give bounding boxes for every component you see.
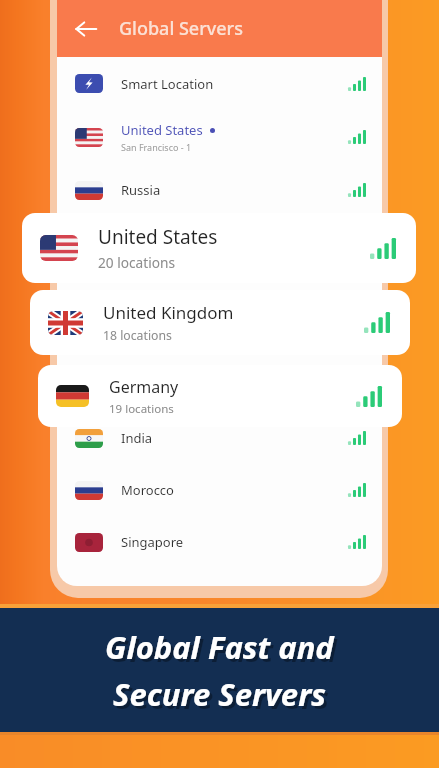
staticText: United States (121, 121, 203, 139)
staticText: 20 locations (98, 253, 175, 272)
button[interactable]: United Kingdom (30, 290, 410, 355)
button[interactable]: India (57, 412, 382, 464)
staticText: Global Fast and (108, 629, 337, 671)
staticText: Germany (109, 376, 179, 398)
staticText: Morocco (121, 481, 174, 499)
button[interactable]: Singapore (57, 516, 382, 568)
button[interactable]: Morocco (57, 464, 382, 516)
button[interactable]: Russia (57, 164, 382, 216)
staticText: Secure Servers (116, 676, 329, 718)
staticText: India (121, 429, 153, 447)
staticText: United Kingdom (103, 301, 234, 324)
button[interactable]: Smart Location (57, 57, 382, 110)
staticText: Russia (121, 181, 161, 199)
button[interactable]: Back (65, 8, 107, 50)
staticText: 19 locations (109, 401, 174, 417)
staticText: San Francisco - 1 (121, 141, 192, 153)
staticText: Smart Location (121, 75, 214, 93)
staticText: Global Servers (119, 16, 243, 41)
button[interactable]: United States (22, 213, 416, 283)
staticText: Singapore (121, 533, 184, 551)
button[interactable]: United States (57, 110, 382, 164)
button[interactable]: Germany (38, 365, 402, 427)
staticText: 18 locations (103, 327, 172, 344)
staticText: Global Fast and (105, 626, 334, 668)
staticText: United States (98, 224, 218, 250)
staticText: Secure Servers (113, 673, 326, 715)
